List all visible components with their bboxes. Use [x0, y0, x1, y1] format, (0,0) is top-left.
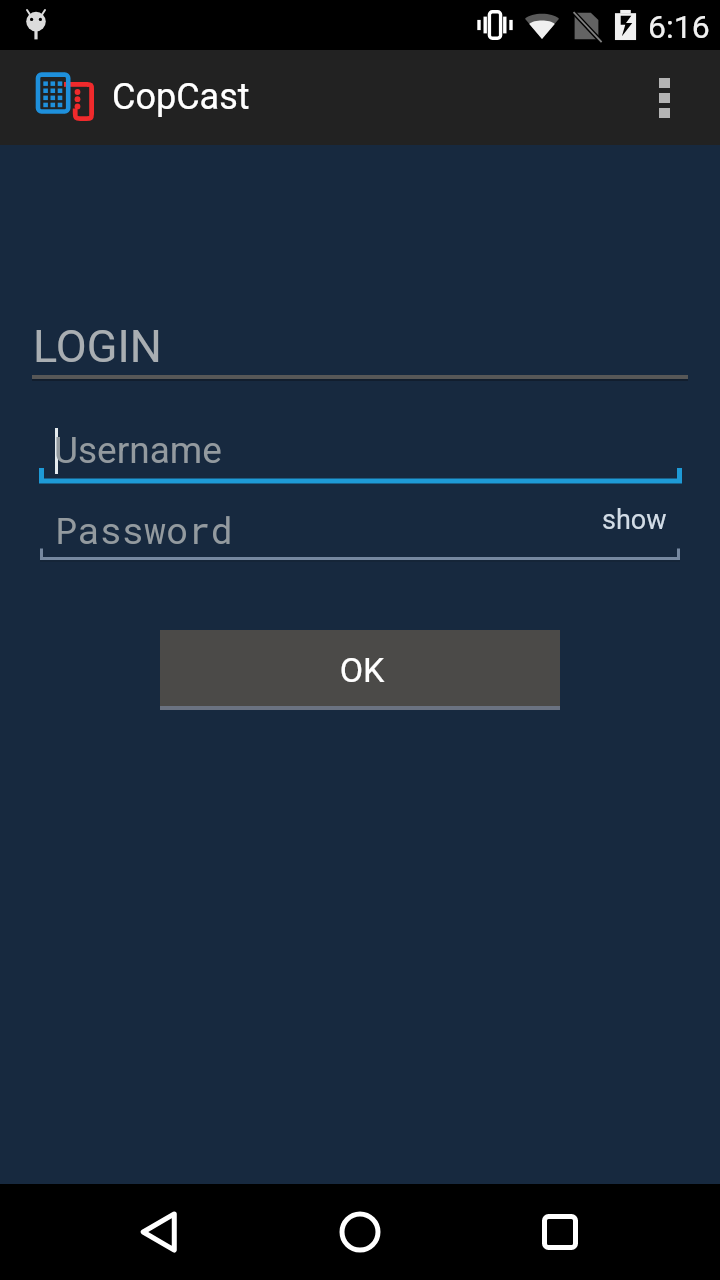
button[interactable]: More options	[616, 50, 712, 145]
button[interactable]: show	[585, 498, 683, 542]
button[interactable]: Username	[0, 420, 720, 486]
staticText: LOGIN	[33, 320, 162, 373]
button[interactable]: Home	[312, 1184, 408, 1280]
staticText: show	[602, 504, 667, 536]
staticText: OK	[162, 650, 562, 690]
button[interactable]: Recent apps	[512, 1184, 608, 1280]
button[interactable]: Password	[0, 500, 720, 562]
staticText: Password	[55, 505, 233, 554]
staticText: 6:16	[648, 8, 710, 46]
staticText: Username	[54, 429, 222, 472]
staticText: CopCast	[112, 76, 250, 118]
button[interactable]: Back	[112, 1184, 208, 1280]
button[interactable]: OK	[160, 630, 560, 711]
